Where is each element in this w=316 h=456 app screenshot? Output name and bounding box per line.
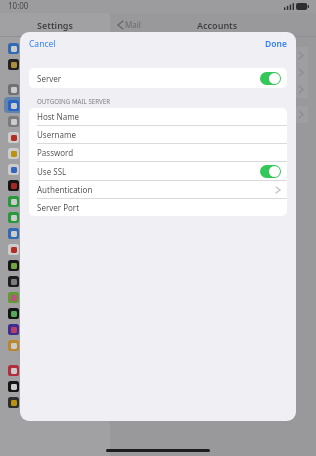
button[interactable] xyxy=(4,129,106,145)
button[interactable]: Toggle on xyxy=(260,165,281,178)
button[interactable]: Server xyxy=(29,68,287,88)
button[interactable] xyxy=(4,161,106,177)
button[interactable] xyxy=(4,321,106,337)
button[interactable] xyxy=(4,145,106,161)
button[interactable] xyxy=(4,209,106,225)
button[interactable]: Password xyxy=(29,143,287,161)
button[interactable] xyxy=(4,193,106,209)
button[interactable] xyxy=(4,113,106,129)
button[interactable] xyxy=(4,337,106,353)
button[interactable] xyxy=(4,305,106,321)
button[interactable]: Done xyxy=(256,34,296,54)
button[interactable] xyxy=(4,362,106,378)
staticText: OUTGOING MAIL SERVER xyxy=(37,97,111,105)
button[interactable] xyxy=(4,257,106,273)
button[interactable]: Username xyxy=(29,125,287,143)
button[interactable]: TV xyxy=(4,378,106,394)
staticText: Cancel xyxy=(29,38,56,50)
button[interactable] xyxy=(4,97,106,113)
button[interactable] xyxy=(4,56,106,72)
button[interactable]: Toggle on xyxy=(260,72,281,85)
staticText: Authentication xyxy=(37,184,93,195)
button[interactable] xyxy=(4,289,106,305)
other: Authentication xyxy=(276,187,280,193)
button[interactable]: Authentication xyxy=(29,180,287,198)
button[interactable] xyxy=(4,81,106,97)
staticText: Use SSL xyxy=(37,166,67,177)
staticText: 10:00 xyxy=(8,0,29,11)
button[interactable] xyxy=(4,241,106,257)
staticText: Password xyxy=(37,147,74,158)
staticText: Accounts xyxy=(197,19,238,31)
staticText: Settings xyxy=(37,19,73,31)
button[interactable] xyxy=(4,40,106,56)
staticText: Username xyxy=(37,129,76,140)
staticText: Server Port xyxy=(37,202,80,213)
button[interactable]: Use SSL xyxy=(29,161,287,180)
staticText: Mail xyxy=(125,19,141,30)
button[interactable]: Host Name xyxy=(29,108,287,125)
button[interactable]: Server Port xyxy=(29,198,287,216)
button[interactable]: Cancel xyxy=(20,34,65,54)
staticText: Done xyxy=(265,38,287,50)
button[interactable] xyxy=(4,177,106,193)
staticText: Host Name xyxy=(37,111,80,122)
button[interactable] xyxy=(4,273,106,289)
button[interactable] xyxy=(4,225,106,241)
staticText: Server xyxy=(37,73,62,84)
button[interactable]: Photos xyxy=(4,394,106,410)
